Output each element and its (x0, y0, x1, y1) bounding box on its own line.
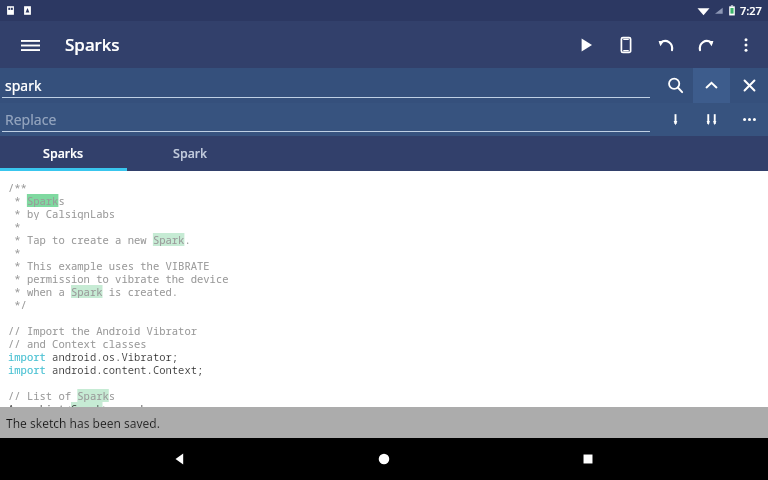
staticText: /** (8, 181, 27, 194)
button[interactable]: Open navigation drawer (10, 25, 50, 65)
button[interactable]: Replace all (693, 103, 730, 136)
button[interactable]: Previous match (693, 68, 730, 103)
button[interactable]: Run sketch (566, 25, 606, 65)
button[interactable]: More options (726, 25, 766, 65)
button[interactable]: Recent apps (564, 438, 612, 480)
button[interactable]: Sparks (0, 136, 127, 171)
staticText: // and Context classes (8, 337, 147, 350)
button[interactable]: Replace (657, 103, 693, 136)
button[interactable]: Search (657, 68, 693, 103)
staticText: Sparks (65, 33, 120, 56)
staticText: The sketch has been saved. (6, 415, 160, 431)
staticText: ArrayList<Spark> sparks; (8, 402, 160, 415)
staticText: import android.content.Context; (8, 363, 204, 376)
staticText: // Import the Android Vibrator (8, 324, 197, 337)
staticText: * permission to vibrate the device (8, 272, 229, 285)
staticText: */ (8, 298, 27, 311)
staticText: Replace (5, 110, 57, 129)
staticText: * (8, 246, 21, 259)
button[interactable]: Undo (646, 25, 686, 65)
staticText: import android.os.Vibrator; (8, 350, 179, 363)
button[interactable]: Select device (606, 25, 646, 65)
staticText: spark (5, 76, 42, 95)
staticText: // List of Sparks (8, 389, 116, 402)
staticText: Spark (173, 145, 208, 162)
button[interactable]: Close search (730, 68, 768, 103)
staticText: * (8, 220, 21, 233)
button[interactable]: Back (156, 438, 204, 480)
staticText: * This example uses the VIBRATE (8, 259, 210, 272)
button[interactable]: Spark (127, 136, 254, 171)
staticText: * Sparks (8, 194, 65, 207)
staticText: 7:27 (740, 3, 762, 18)
button[interactable]: Redo (686, 25, 726, 65)
staticText: * by CalsignLabs (8, 207, 116, 220)
staticText: Sparks (43, 145, 84, 162)
staticText: * Tap to create a new Spark. (8, 233, 191, 246)
button[interactable]: Home (360, 438, 408, 480)
staticText: * when a Spark is created. (8, 285, 179, 298)
button[interactable]: More search options (730, 103, 768, 136)
